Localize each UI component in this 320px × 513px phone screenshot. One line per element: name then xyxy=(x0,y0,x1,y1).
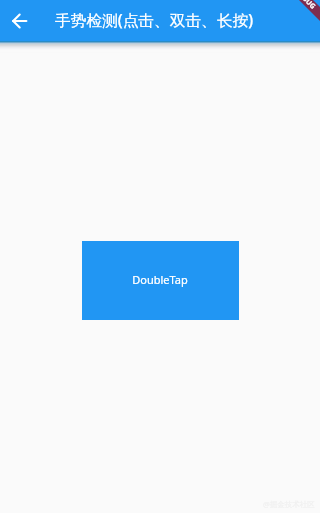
staticText: DoubleTap xyxy=(132,272,188,287)
staticText: DEBUG xyxy=(293,0,318,12)
staticText: @掘金技术社区 xyxy=(263,499,315,509)
staticText: 手势检测(点击、双击、长按) xyxy=(55,9,254,30)
button[interactable]: DoubleTap xyxy=(82,241,239,320)
button[interactable]: Back xyxy=(6,7,34,35)
